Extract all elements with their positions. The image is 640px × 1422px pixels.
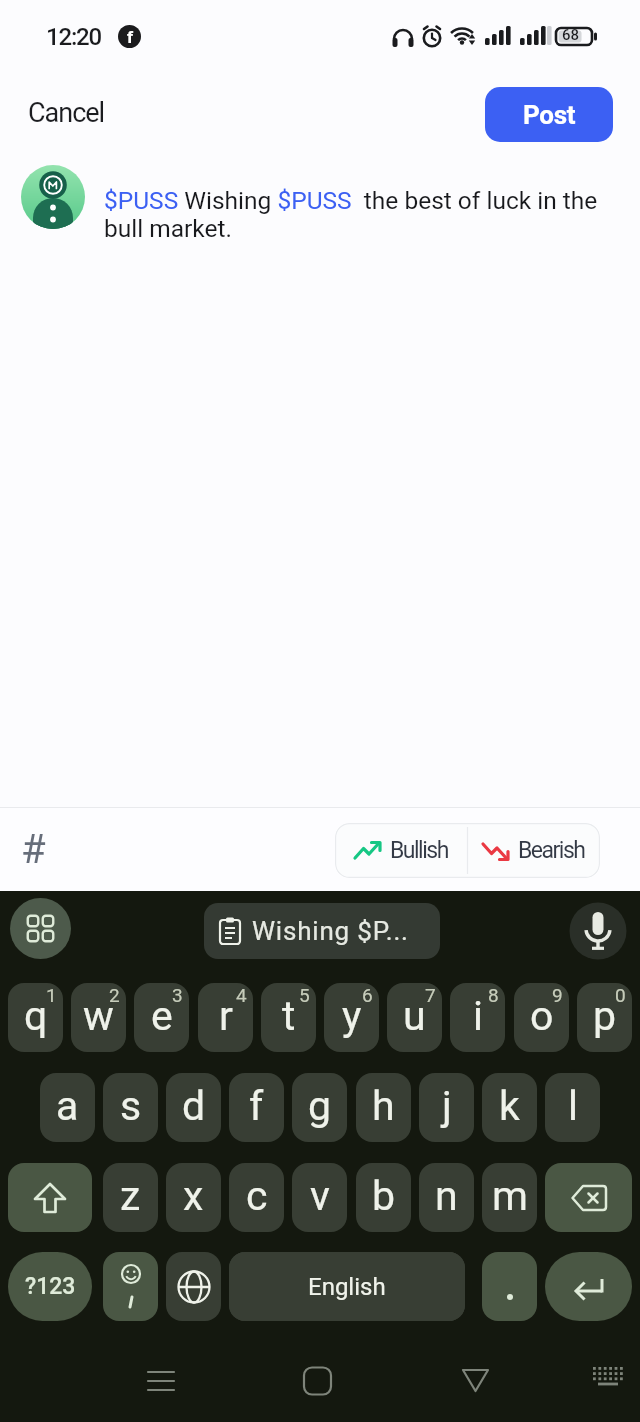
button[interactable]: # xyxy=(10,826,56,872)
staticText: # xyxy=(21,826,46,872)
staticText: v xyxy=(310,1172,330,1220)
staticText: 5 xyxy=(299,984,310,1006)
staticText: 4 xyxy=(236,984,247,1006)
button[interactable]: q xyxy=(8,983,63,1052)
button[interactable]: f xyxy=(229,1073,284,1142)
staticText: 1 xyxy=(46,984,57,1006)
staticText: 6 xyxy=(362,984,373,1006)
button[interactable] xyxy=(229,1252,465,1321)
button[interactable]: v xyxy=(292,1163,347,1232)
staticText: Bullish xyxy=(390,837,448,864)
staticText: b xyxy=(372,1172,396,1220)
staticText: g xyxy=(308,1082,332,1130)
button[interactable]: w xyxy=(71,983,126,1052)
button[interactable]: ?123 xyxy=(8,1252,92,1321)
staticText: h xyxy=(372,1082,395,1130)
button[interactable]: g xyxy=(292,1073,347,1142)
staticText: d xyxy=(182,1082,206,1130)
staticText: o xyxy=(530,992,554,1040)
button[interactable]: j xyxy=(419,1073,474,1142)
staticText: 68 xyxy=(562,26,580,44)
staticText: ?123 xyxy=(25,1273,76,1300)
button[interactable]: English xyxy=(229,1252,465,1321)
staticText: 0 xyxy=(615,984,626,1006)
button[interactable]: d xyxy=(166,1073,221,1142)
button[interactable] xyxy=(569,902,627,960)
button[interactable] xyxy=(10,898,71,959)
button[interactable] xyxy=(545,1163,632,1232)
staticText: s xyxy=(120,1082,142,1130)
staticText: i xyxy=(473,992,483,1040)
button[interactable]: i xyxy=(450,983,505,1052)
staticText: m xyxy=(492,1172,528,1220)
staticText: u xyxy=(403,992,426,1040)
staticText: r xyxy=(219,992,233,1040)
button[interactable]: n xyxy=(419,1163,474,1232)
button[interactable] xyxy=(545,1252,632,1321)
button[interactable]: h xyxy=(356,1073,411,1142)
button[interactable]: Wishing $P... xyxy=(204,903,440,959)
button[interactable]: Cancel xyxy=(28,97,105,129)
staticText: f xyxy=(249,1082,264,1130)
staticText: c xyxy=(246,1172,268,1220)
button[interactable]: x xyxy=(166,1163,221,1232)
button[interactable] xyxy=(166,1252,221,1321)
staticText: 7 xyxy=(425,984,436,1006)
staticText: n xyxy=(435,1172,458,1220)
button[interactable]: r xyxy=(198,983,253,1052)
button[interactable]: u xyxy=(387,983,442,1052)
staticText: Post xyxy=(523,100,576,130)
button[interactable]: s xyxy=(103,1073,158,1142)
staticText: Wishing $P... xyxy=(252,916,409,946)
button[interactable]: e xyxy=(134,983,189,1052)
button[interactable]: Bearish xyxy=(467,823,600,878)
button[interactable]: l xyxy=(545,1073,600,1142)
staticText: 9 xyxy=(552,984,563,1006)
button[interactable] xyxy=(8,1163,92,1232)
staticText: e xyxy=(151,992,173,1040)
staticText: q xyxy=(24,992,48,1040)
staticText: t xyxy=(282,992,296,1040)
button[interactable]: o xyxy=(514,983,569,1052)
staticText: 3 xyxy=(172,984,183,1006)
button[interactable]: c xyxy=(229,1163,284,1232)
staticText: p xyxy=(593,992,617,1040)
staticText: English xyxy=(308,1273,386,1301)
button[interactable]: t xyxy=(261,983,316,1052)
button[interactable]: Bullish xyxy=(335,823,467,878)
staticText: 8 xyxy=(488,984,499,1006)
staticText: Cancel xyxy=(28,97,105,129)
staticText: y xyxy=(342,992,362,1040)
staticText: z xyxy=(120,1172,141,1220)
button[interactable]: m xyxy=(482,1163,537,1232)
staticText: l xyxy=(568,1082,578,1130)
staticText: j xyxy=(442,1082,452,1130)
staticText: x xyxy=(183,1172,204,1220)
button[interactable]: p xyxy=(577,983,632,1052)
staticText: $PUSS Wishing $PUSS the best of luck in … xyxy=(104,186,598,215)
button[interactable]: k xyxy=(482,1073,537,1142)
staticText: k xyxy=(499,1082,520,1130)
staticText: w xyxy=(83,992,114,1040)
button[interactable] xyxy=(482,1252,537,1321)
button[interactable]: Post xyxy=(485,87,613,142)
staticText: f xyxy=(127,27,134,47)
staticText: a xyxy=(56,1082,79,1130)
button[interactable]: z xyxy=(103,1163,158,1232)
button[interactable]: b xyxy=(356,1163,411,1232)
button[interactable]: y xyxy=(324,983,379,1052)
staticText: 12:20 xyxy=(46,23,101,51)
staticText: Bearish xyxy=(518,837,585,864)
staticText: 2 xyxy=(109,984,120,1006)
button[interactable] xyxy=(103,1252,158,1321)
button[interactable]: a xyxy=(40,1073,95,1142)
staticText: bull market. xyxy=(104,214,233,243)
